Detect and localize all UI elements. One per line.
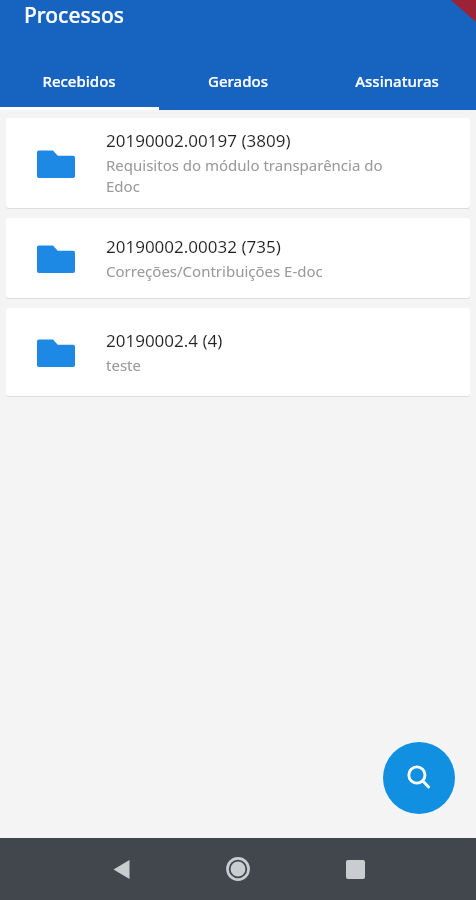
staticText: Requisitos do módulo transparência do Ed… xyxy=(106,155,383,197)
staticText: Processos xyxy=(24,1,124,30)
button[interactable]: Back xyxy=(95,843,147,895)
staticText: Correções/Contribuições E-doc xyxy=(106,261,323,281)
button[interactable]: Recent apps xyxy=(329,843,381,895)
button[interactable]: Home xyxy=(212,843,264,895)
staticText: Gerados xyxy=(208,71,268,91)
staticText: 20190002.00197 (3809) xyxy=(106,129,291,152)
button[interactable]: Recebidos xyxy=(0,52,158,110)
staticText: Assinaturas xyxy=(355,71,439,91)
staticText: 20190002.4 (4) xyxy=(106,329,223,352)
staticText: teste xyxy=(106,355,141,375)
button[interactable]: Gerados xyxy=(158,52,317,110)
button[interactable]: 20190002.4 (4) xyxy=(6,308,470,396)
button[interactable]: 20190002.00032 (735) xyxy=(6,218,470,298)
button[interactable]: 20190002.00197 (3809) xyxy=(6,118,470,208)
staticText: 20190002.00032 (735) xyxy=(106,235,281,258)
button[interactable]: Search xyxy=(383,742,455,814)
button[interactable]: Assinaturas xyxy=(317,52,476,110)
staticText: Recebidos xyxy=(42,71,116,91)
